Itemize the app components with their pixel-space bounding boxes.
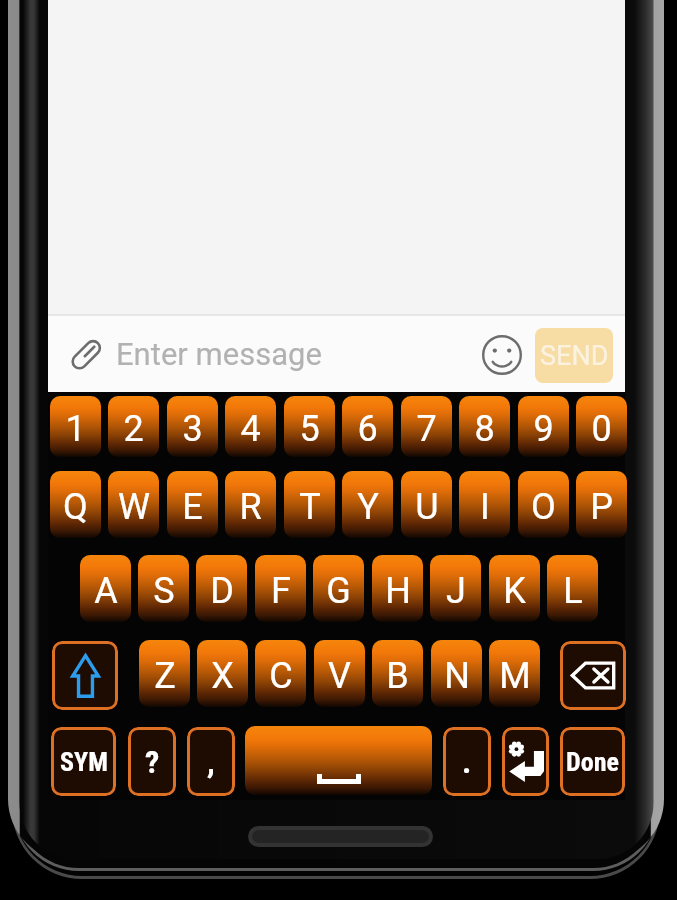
button[interactable]: 5	[284, 396, 335, 457]
button[interactable]: 0	[576, 396, 627, 457]
staticText: I	[480, 486, 490, 528]
staticText: A	[94, 570, 118, 612]
button[interactable]: Shift	[52, 641, 118, 710]
button[interactable]: T	[284, 471, 335, 538]
staticText: M	[499, 655, 531, 697]
button[interactable]: 2	[108, 396, 159, 457]
button[interactable]: Y	[342, 471, 393, 538]
staticText: F	[271, 570, 291, 612]
button[interactable]: A	[80, 555, 131, 622]
button[interactable]: H	[372, 555, 423, 622]
button[interactable]: W	[108, 471, 159, 538]
staticText: Q	[63, 486, 88, 528]
staticText: G	[326, 570, 351, 612]
staticText: K	[503, 570, 526, 612]
button[interactable]: C	[255, 640, 306, 707]
button[interactable]: 9	[518, 396, 569, 457]
button[interactable]: S	[138, 555, 189, 622]
button[interactable]: F	[255, 555, 306, 622]
button[interactable]: O	[518, 471, 569, 538]
staticText: 9	[533, 408, 554, 450]
staticText: .	[462, 743, 472, 781]
button[interactable]: Enter	[502, 727, 549, 796]
button[interactable]: J	[430, 555, 481, 622]
button[interactable]: ?	[128, 727, 176, 796]
staticText: 5	[299, 408, 320, 450]
staticText: T	[299, 486, 321, 528]
button[interactable]: X	[197, 640, 248, 707]
button[interactable]: Q	[50, 471, 101, 538]
staticText: N	[444, 655, 470, 697]
staticText: B	[386, 655, 409, 697]
staticText: V	[328, 655, 351, 697]
staticText: 1	[65, 408, 86, 450]
staticText: C	[269, 655, 293, 697]
staticText: E	[182, 486, 203, 528]
staticText: ,	[207, 743, 215, 781]
button[interactable]: 1	[50, 396, 101, 457]
button[interactable]: Z	[139, 640, 190, 707]
staticText: Z	[154, 655, 176, 697]
button[interactable]: D	[196, 555, 247, 622]
button[interactable]: .	[443, 727, 491, 796]
button[interactable]: R	[225, 471, 276, 538]
button[interactable]: P	[576, 471, 627, 538]
staticText: S	[153, 570, 175, 612]
staticText: D	[210, 570, 234, 612]
button[interactable]: N	[431, 640, 482, 707]
staticText: 2	[123, 408, 144, 450]
button[interactable]: Emoji	[480, 333, 524, 377]
button[interactable]: SEND	[535, 328, 613, 383]
staticText: 7	[416, 408, 437, 450]
staticText: 3	[182, 408, 203, 450]
button[interactable]: Backspace	[560, 641, 626, 710]
staticText: O	[531, 486, 556, 528]
staticText: Done	[566, 747, 619, 777]
staticText: U	[415, 486, 439, 528]
staticText: J	[446, 570, 466, 612]
staticText: X	[211, 655, 234, 697]
staticText: 8	[474, 408, 495, 450]
button[interactable]: Done	[560, 727, 625, 796]
button[interactable]: 4	[225, 396, 276, 457]
button[interactable]: 8	[459, 396, 510, 457]
staticText: 4	[240, 408, 261, 450]
button[interactable]: G	[313, 555, 364, 622]
button[interactable]: ,	[187, 727, 235, 796]
staticText: SEND	[540, 340, 609, 372]
button[interactable]: Attach file	[64, 333, 108, 377]
staticText: Y	[357, 486, 379, 528]
staticText: Enter message	[116, 336, 322, 372]
staticText: SYM	[60, 747, 108, 777]
staticText: 6	[357, 408, 378, 450]
staticText: W	[118, 486, 150, 528]
staticText: P	[590, 486, 613, 528]
button[interactable]: 3	[167, 396, 218, 457]
button[interactable]: E	[167, 471, 218, 538]
button[interactable]: SYM	[51, 727, 116, 796]
staticText: 0	[591, 408, 612, 450]
button[interactable]: 6	[342, 396, 393, 457]
staticText: L	[563, 570, 583, 612]
staticText: H	[385, 570, 411, 612]
button[interactable]: L	[547, 555, 598, 622]
button[interactable]: V	[314, 640, 365, 707]
button[interactable]: Space	[245, 726, 432, 795]
staticText: ?	[145, 743, 160, 781]
staticText: R	[239, 486, 262, 528]
button[interactable]: M	[489, 640, 540, 707]
button[interactable]: I	[459, 471, 510, 538]
button[interactable]: U	[401, 471, 452, 538]
button[interactable]: 7	[401, 396, 452, 457]
button[interactable]: K	[489, 555, 540, 622]
button[interactable]: B	[372, 640, 423, 707]
